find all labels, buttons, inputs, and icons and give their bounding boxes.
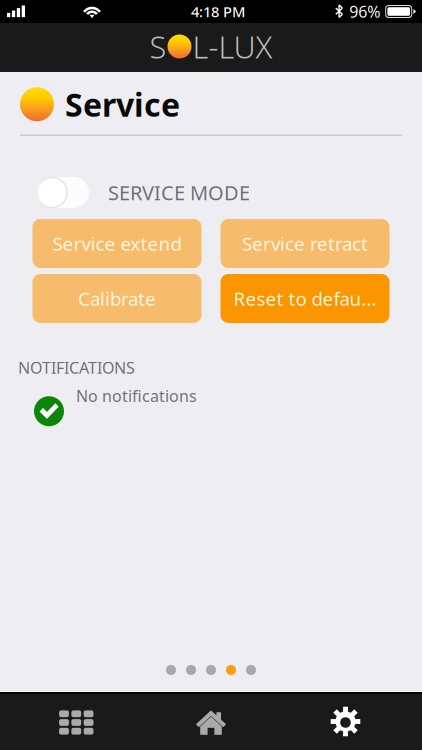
button[interactable]: Service extend: [32, 219, 201, 268]
staticText: S: [149, 26, 166, 67]
button[interactable]: Calibrate: [32, 274, 201, 323]
button[interactable]: Reset to defau...: [220, 274, 389, 323]
staticText: Service extend: [52, 231, 181, 256]
staticText: L-LUX: [192, 26, 272, 67]
staticText: 96%: [349, 1, 380, 22]
button[interactable]: Service mode: [36, 177, 89, 208]
staticText: NOTIFICATIONS: [18, 357, 135, 378]
staticText: Calibrate: [78, 286, 156, 311]
button[interactable]: Service retract: [220, 219, 389, 268]
staticText: Service retract: [242, 231, 368, 256]
staticText: Reset to defau...: [233, 286, 376, 311]
button[interactable]: Home: [135, 694, 287, 750]
button[interactable]: Dashboard: [0, 694, 135, 750]
staticText: Service: [65, 83, 180, 125]
staticText: 4:18 PM: [191, 2, 245, 21]
button[interactable]: Settings: [287, 694, 422, 750]
staticText: No notifications: [76, 385, 197, 406]
staticText: SERVICE MODE: [108, 179, 250, 206]
